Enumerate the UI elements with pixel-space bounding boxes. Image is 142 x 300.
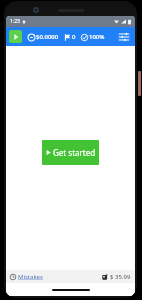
button[interactable]: Start xyxy=(9,30,22,43)
staticText: 1:23 xyxy=(10,18,20,25)
staticText: Get started xyxy=(53,147,96,158)
staticText: 100% xyxy=(89,33,105,41)
staticText: $0.0000 xyxy=(36,33,59,41)
button[interactable]: $0.0000 xyxy=(28,33,59,41)
staticText: 0 xyxy=(72,33,76,41)
staticText: Mistakes xyxy=(18,273,43,281)
button[interactable]: Settings xyxy=(117,30,131,44)
button[interactable]: 100% xyxy=(81,33,105,41)
button[interactable]: Mistakes xyxy=(10,273,43,281)
staticText: $ 35.99 xyxy=(110,273,131,281)
button[interactable]: $ 35.99 xyxy=(102,273,131,281)
button[interactable]: 0 xyxy=(64,33,76,41)
button[interactable]: Get started xyxy=(42,140,99,165)
